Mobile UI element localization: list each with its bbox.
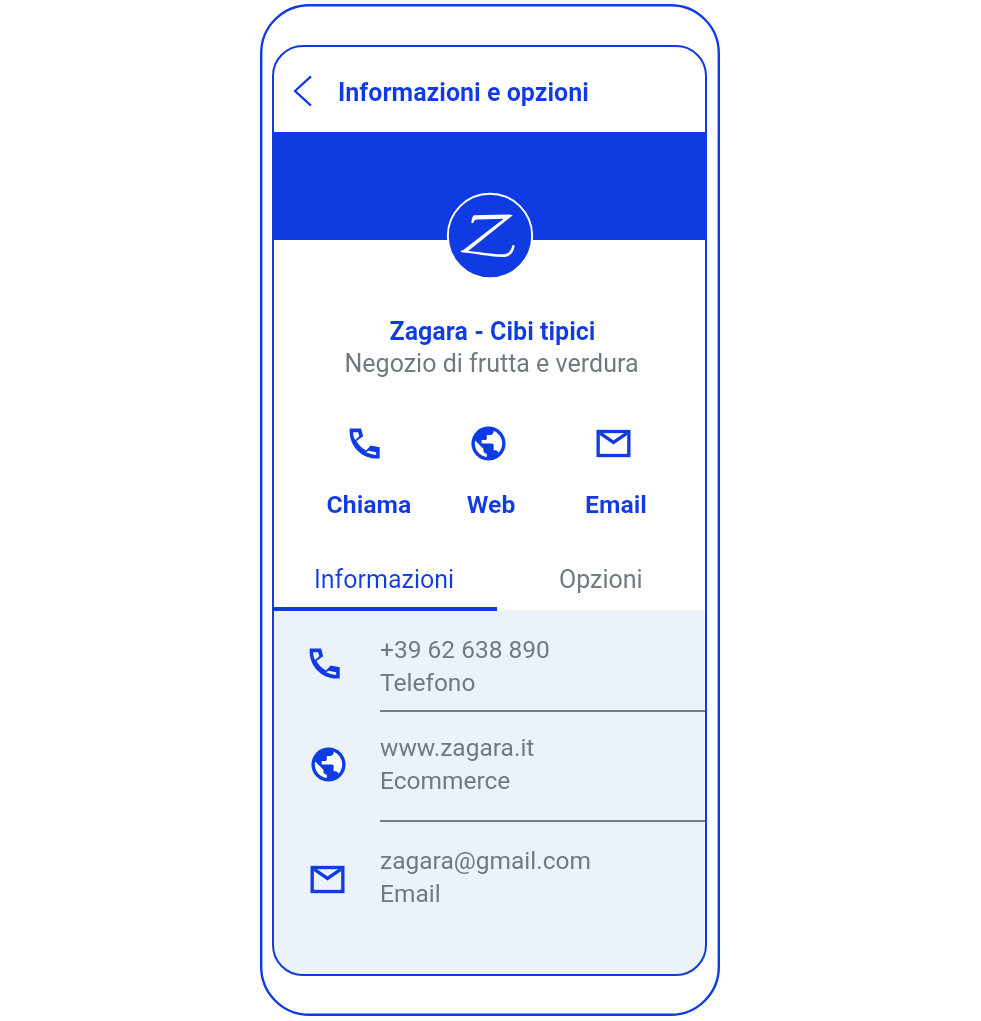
button[interactable]: Indietro	[281, 69, 325, 113]
staticText: www.zagara.it	[380, 733, 535, 762]
staticText: Opzioni	[559, 565, 643, 594]
staticText: Email	[561, 490, 671, 519]
staticText: zagara@gmail.com	[380, 846, 591, 875]
button[interactable]: Email	[561, 408, 671, 528]
button[interactable]: Opzioni	[495, 552, 707, 607]
staticText: Informazioni e opzioni	[338, 78, 589, 107]
button[interactable]: Informazioni	[272, 552, 497, 607]
staticText: +39 62 638 890	[380, 635, 550, 664]
staticText: Web	[436, 490, 546, 519]
button[interactable]: Chiama	[314, 408, 424, 528]
button[interactable]: zagara@gmail.com	[272, 821, 707, 931]
staticText: Telefono	[380, 668, 476, 697]
button[interactable]: +39 62 638 890	[272, 610, 707, 712]
staticText: Email	[380, 879, 441, 908]
staticText: Chiama	[314, 490, 424, 519]
staticText: Ecommerce	[380, 766, 511, 795]
button[interactable]: www.zagara.it	[272, 712, 707, 822]
button[interactable]: Web	[436, 408, 546, 528]
staticText: Zagara - Cibi tipici	[275, 317, 707, 346]
staticText: Informazioni	[314, 565, 455, 594]
staticText: Negozio di frutta e verdura	[274, 349, 707, 378]
